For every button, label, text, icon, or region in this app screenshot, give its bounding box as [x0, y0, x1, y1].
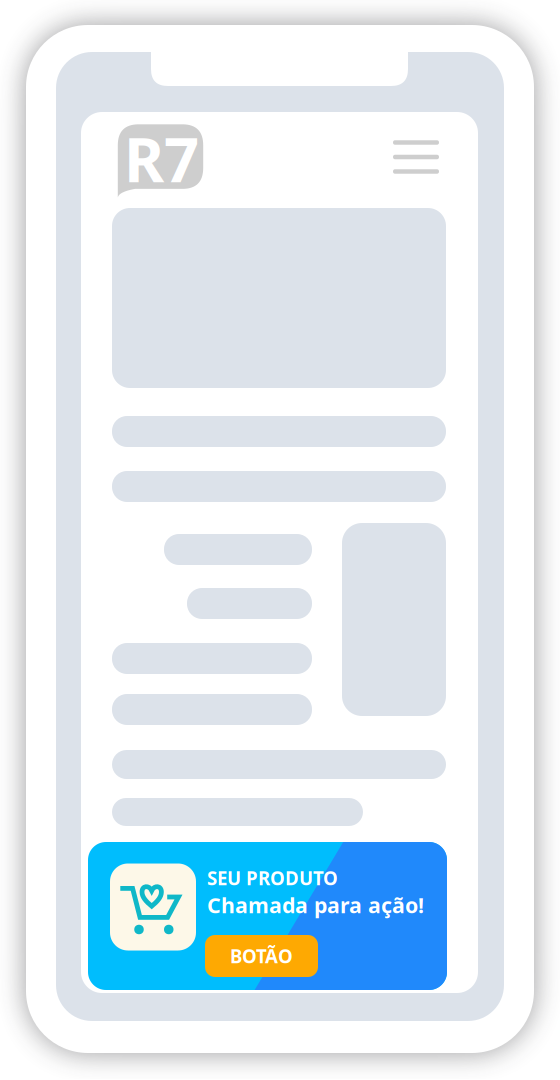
staticText: R7	[124, 118, 199, 199]
staticText: BOTÃO	[230, 944, 293, 968]
staticText: Chamada para ação!	[207, 891, 424, 919]
staticText: SEU PRODUTO	[207, 866, 338, 890]
button[interactable]: SEU PRODUTO	[88, 842, 447, 990]
button[interactable]: Menu	[385, 131, 447, 183]
